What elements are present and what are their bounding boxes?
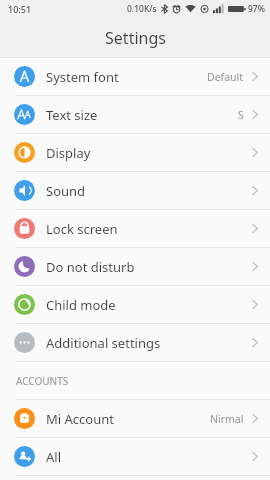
button[interactable]: Child mode (0, 286, 270, 323)
staticText: Text size (46, 106, 98, 124)
button[interactable]: System font (0, 58, 270, 95)
button[interactable]: Text size (0, 96, 270, 133)
staticText: ACCOUNTS (16, 374, 69, 388)
staticText: Settings (105, 27, 166, 49)
staticText: 97% (248, 3, 265, 15)
staticText: Default (207, 70, 244, 84)
button[interactable]: Display (0, 134, 270, 171)
staticText: All (46, 448, 62, 466)
staticText: 10:51 (8, 3, 32, 15)
staticText: Mi Account (46, 410, 114, 428)
staticText: Child mode (46, 296, 116, 314)
button[interactable]: Lock screen (0, 210, 270, 247)
staticText: Sound (46, 182, 86, 200)
staticText: S (238, 108, 244, 122)
staticText: System font (46, 68, 119, 86)
staticText: 0.10K/s (127, 3, 157, 15)
button[interactable]: All (0, 438, 270, 475)
staticText: Lock screen (46, 220, 118, 238)
button[interactable]: Mi Account (0, 400, 270, 437)
button[interactable]: Sound (0, 172, 270, 209)
staticText: Additional settings (46, 334, 161, 352)
button[interactable]: Additional settings (0, 324, 270, 361)
button[interactable]: Do not disturb (0, 248, 270, 285)
staticText: Nirmal (210, 412, 244, 426)
staticText: Do not disturb (46, 258, 135, 276)
staticText: Display (46, 144, 91, 162)
